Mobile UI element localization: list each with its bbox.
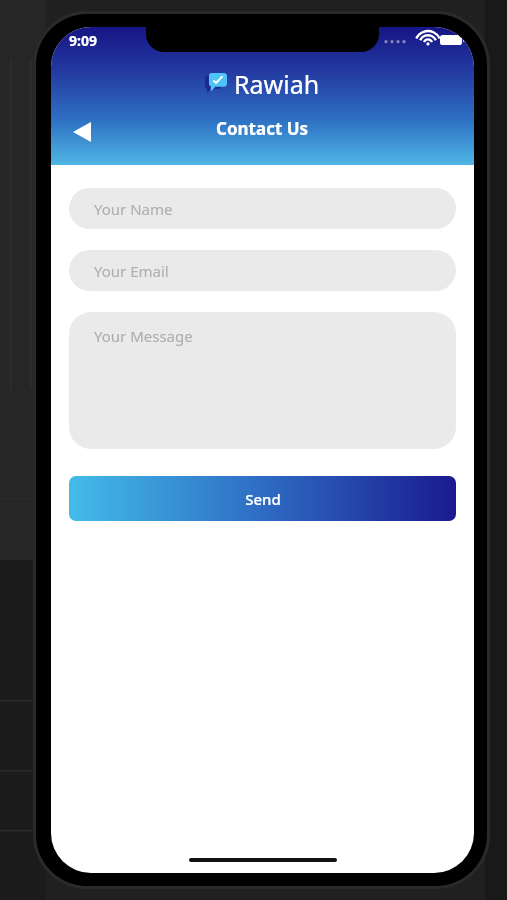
staticText: Your Name <box>94 199 173 219</box>
staticText: 9:09 <box>69 31 97 50</box>
staticText: Rawiah <box>234 67 320 101</box>
staticText: Contact Us <box>216 117 309 140</box>
button[interactable]: Your Name <box>69 188 456 229</box>
button[interactable]: Send <box>69 476 456 521</box>
staticText: Your Message <box>94 326 193 346</box>
button[interactable]: Back <box>59 109 105 155</box>
button[interactable]: Your Email <box>69 250 456 291</box>
staticText: Your Email <box>94 261 169 281</box>
button[interactable]: Your Message <box>69 312 456 449</box>
staticText: Send <box>245 489 281 509</box>
